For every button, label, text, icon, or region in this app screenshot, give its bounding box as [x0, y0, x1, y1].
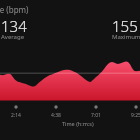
staticText: 134 [1, 16, 27, 36]
staticText: 4:38 [51, 112, 61, 119]
staticText: 155 [112, 16, 138, 36]
staticText: Time (h:m:s) [62, 120, 94, 127]
staticText: 2:14 [11, 112, 21, 119]
staticText: 9:25 [131, 112, 140, 119]
staticText: Maximum [112, 33, 140, 41]
staticText: 7:01 [91, 112, 101, 119]
staticText: Average [1, 33, 25, 41]
staticText: Heart rate (bpm) [0, 4, 29, 15]
